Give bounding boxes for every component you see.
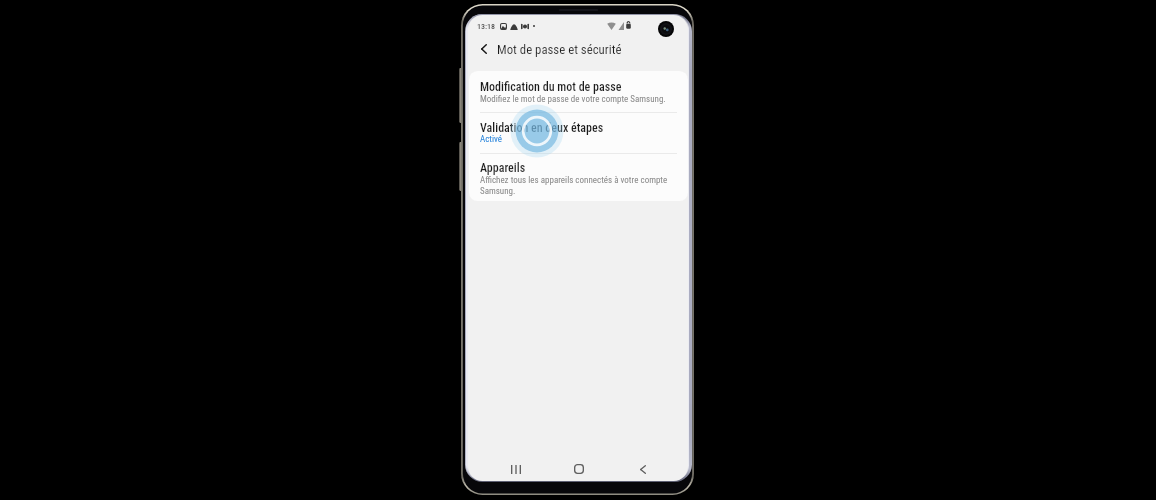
button[interactable] bbox=[469, 151, 688, 198]
staticText: 13:18 bbox=[477, 22, 496, 31]
staticText: Affichez tous les appareils connectés à … bbox=[480, 175, 670, 197]
staticText: Modifiez le mot de passe de votre compte… bbox=[480, 94, 666, 105]
staticText: Activé bbox=[480, 134, 503, 145]
button[interactable]: Home bbox=[561, 455, 597, 481]
button[interactable]: Recent apps bbox=[498, 455, 534, 481]
button[interactable] bbox=[469, 71, 688, 111]
staticText: Mot de passe et sécurité bbox=[497, 42, 622, 57]
staticText: Modification du mot de passe bbox=[480, 80, 622, 94]
button[interactable]: Navigate up bbox=[472, 37, 496, 61]
staticText: Validation en deux étapes bbox=[480, 121, 604, 135]
button[interactable]: Back bbox=[625, 455, 661, 481]
staticText: Appareils bbox=[480, 161, 526, 175]
button[interactable] bbox=[469, 111, 688, 151]
